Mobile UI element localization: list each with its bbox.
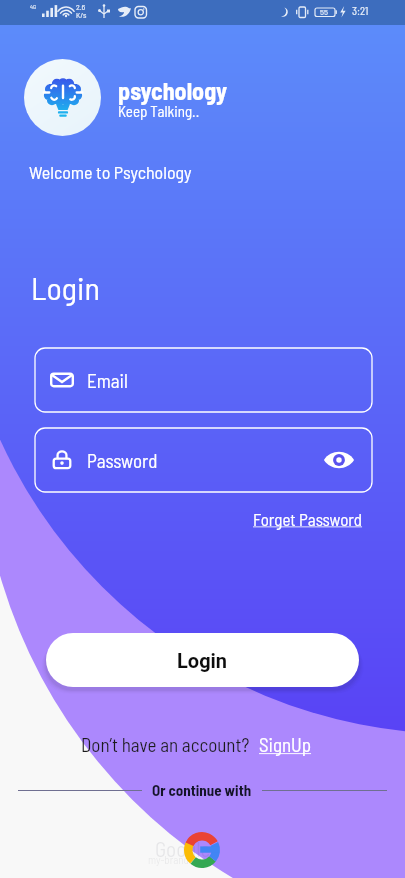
button[interactable]: Forget Password bbox=[253, 509, 363, 529]
button[interactable]: Password bbox=[35, 428, 372, 492]
staticText: Keep Talking.. bbox=[118, 102, 200, 120]
staticText: my-brand.com bbox=[148, 853, 210, 866]
button[interactable]: Show password bbox=[323, 444, 355, 476]
staticText: Login bbox=[177, 649, 228, 672]
staticText: Google bbox=[155, 836, 211, 861]
staticText: K/s bbox=[76, 10, 87, 20]
staticText: 4G bbox=[30, 3, 37, 10]
staticText: Don’t have an account? bbox=[81, 733, 250, 756]
staticText: psychology bbox=[118, 76, 228, 105]
staticText: Login bbox=[31, 268, 100, 306]
button[interactable]: SignUp bbox=[259, 733, 312, 756]
staticText: 3:21 bbox=[352, 4, 369, 17]
button[interactable]: Continue with Google bbox=[180, 828, 224, 872]
staticText: Email bbox=[87, 369, 128, 392]
button[interactable]: Email bbox=[35, 348, 372, 412]
staticText: 55 bbox=[320, 6, 328, 16]
staticText: Or continue with bbox=[152, 781, 252, 799]
button[interactable]: Login bbox=[46, 633, 359, 687]
staticText: 2.6 bbox=[76, 2, 86, 12]
staticText: Welcome to Psychology bbox=[29, 161, 192, 183]
staticText: Password bbox=[87, 449, 158, 472]
